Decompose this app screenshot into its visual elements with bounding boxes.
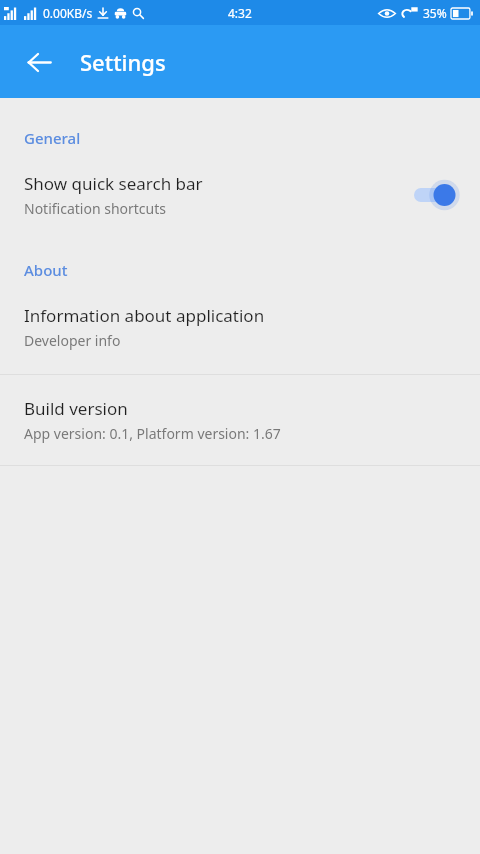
button[interactable]: Show quick search bar xyxy=(0,172,480,218)
staticText: 0.00KB/s xyxy=(43,5,93,21)
button[interactable]: Information about application xyxy=(0,304,480,350)
staticText: About xyxy=(24,260,68,280)
staticText: 35% xyxy=(423,5,447,21)
staticText: 4:32 xyxy=(228,5,252,21)
staticText: Settings xyxy=(80,47,166,77)
button[interactable]: Back xyxy=(15,38,63,86)
staticText: Notification shortcuts xyxy=(24,199,167,218)
staticText: Build version xyxy=(24,397,128,420)
staticText: Show quick search bar xyxy=(24,172,203,195)
button[interactable]: Show quick search bar toggle xyxy=(406,178,462,212)
staticText: Information about application xyxy=(24,304,265,327)
button[interactable]: Build version xyxy=(0,397,480,443)
staticText: General xyxy=(24,128,81,148)
staticText: Developer info xyxy=(24,331,121,350)
staticText: App version: 0.1, Platform version: 1.67 xyxy=(24,424,281,443)
